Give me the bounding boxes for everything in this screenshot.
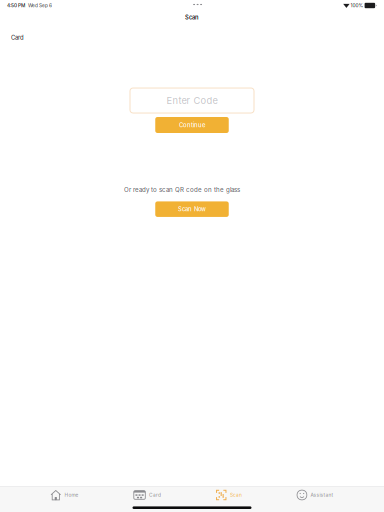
button[interactable]: Scan Now — [155, 201, 229, 217]
staticText: Assistant — [310, 492, 333, 498]
staticText: Wed Sep 6 — [25, 3, 52, 8]
staticText: Or ready to scan QR code on the glass — [124, 186, 240, 193]
staticText: 4:50 PM — [7, 3, 25, 8]
button[interactable]: Card — [128, 487, 167, 503]
button[interactable]: Home — [45, 487, 85, 503]
button[interactable]: Assistant — [291, 487, 339, 503]
button[interactable]: Scan — [210, 487, 248, 503]
staticText: Scan — [185, 14, 199, 21]
staticText: Card — [149, 492, 161, 498]
staticText: Enter Code — [166, 95, 217, 106]
staticText: Home — [65, 492, 79, 498]
staticText: Continue — [179, 121, 205, 129]
staticText: Scan — [230, 492, 242, 498]
staticText: Scan Now — [178, 206, 206, 213]
button[interactable]: Card — [0, 31, 35, 44]
staticText: Card — [11, 34, 24, 41]
button[interactable]: Continue — [155, 117, 229, 133]
staticText: 100% — [350, 3, 365, 8]
